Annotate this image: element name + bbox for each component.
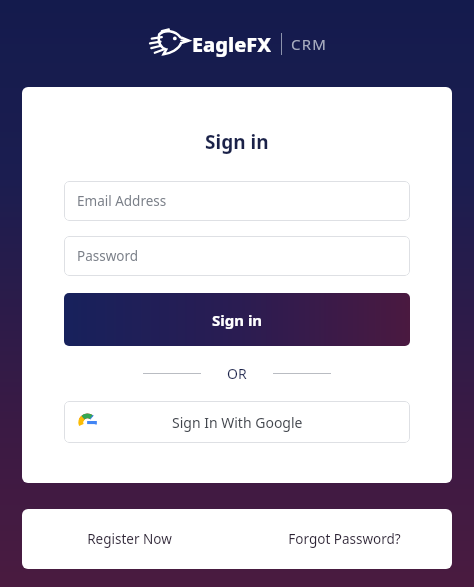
- staticText: OR: [227, 364, 247, 383]
- other: EagleFX logo: [146, 27, 190, 61]
- staticText: Sign in: [205, 129, 269, 155]
- staticText: Sign In With Google: [172, 413, 303, 432]
- button[interactable]: Password: [64, 236, 410, 276]
- staticText: Password: [77, 247, 139, 265]
- staticText: Sign in: [212, 310, 263, 330]
- button[interactable]: Sign in: [64, 293, 410, 346]
- staticText: Forgot Password?: [288, 530, 401, 548]
- button[interactable]: Register Now: [22, 509, 237, 569]
- button[interactable]: Email Address: [64, 181, 410, 221]
- staticText: CRM: [291, 34, 328, 54]
- button[interactable]: Forgot Password?: [237, 509, 452, 569]
- staticText: EagleFX: [192, 31, 272, 58]
- staticText: Email Address: [77, 192, 167, 210]
- staticText: Register Now: [87, 530, 172, 548]
- button[interactable]: Sign In With Google: [64, 401, 410, 443]
